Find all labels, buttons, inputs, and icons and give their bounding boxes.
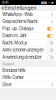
staticText: Einstellungen [5, 5, 37, 11]
button[interactable]: Benutzerhilfe [0, 67, 56, 74]
staticText: WhatsApp-Web [2, 12, 33, 17]
staticText: 9:41 [2, 0, 8, 5]
button[interactable]: Gespeicherte Nachr. [0, 18, 56, 25]
button[interactable]: Über [0, 81, 56, 88]
staticText: Nacht-Modus [2, 40, 27, 45]
staticText: Daten im Jahr [2, 33, 27, 38]
button[interactable]: Daten im Jahr [0, 32, 56, 39]
staticText: Support [2, 62, 14, 66]
staticText: Anwendungsbenutzer [2, 55, 42, 60]
staticText: ▮▮▮ ⌁ ▰ [41, 0, 54, 4]
staticText: Benutzerhilfe [2, 68, 25, 73]
button[interactable]: Nacht-Modus [0, 40, 56, 47]
button[interactable]: Hilfe-Center [0, 74, 56, 81]
button[interactable]: Aktiv schonen anzeigen [0, 47, 56, 54]
button[interactable]: Anwendungsbenutzer [0, 54, 56, 61]
button[interactable]: Einstellungen [0, 5, 37, 11]
staticText: Aktiv schonen anzeigen [2, 48, 43, 53]
staticText: Pop-up-Dialoge [2, 26, 33, 31]
staticText: Gespeicherte Nachr. [2, 19, 38, 24]
button[interactable]: WhatsApp-Web [0, 11, 56, 18]
button[interactable]: Pop-up-Dialoge [0, 25, 56, 32]
staticText: Hilfe-Center [2, 75, 24, 80]
staticText: Über [2, 82, 12, 87]
